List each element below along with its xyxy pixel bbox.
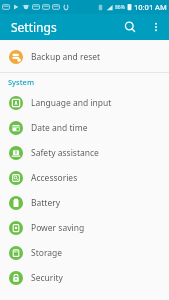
button[interactable]: Accessories xyxy=(0,165,169,190)
staticText: Language and input xyxy=(31,97,112,109)
button[interactable]: Backup and reset xyxy=(0,44,169,69)
staticText: Date and time xyxy=(31,122,88,134)
staticText: Accessories xyxy=(31,172,78,184)
staticText: Backup and reset xyxy=(31,51,101,63)
button[interactable]: Language and input xyxy=(0,90,169,115)
button[interactable]: More options xyxy=(143,14,169,40)
button[interactable]: Security xyxy=(0,265,169,290)
staticText: Power saving xyxy=(31,222,85,234)
button[interactable]: Safety assistance xyxy=(0,140,169,165)
staticText: 86% xyxy=(115,4,125,11)
button[interactable]: Date and time xyxy=(0,115,169,140)
button[interactable]: Search xyxy=(117,14,143,40)
staticText: Settings xyxy=(11,19,57,35)
staticText: System xyxy=(8,77,35,87)
staticText: Battery xyxy=(31,197,61,209)
staticText: Security xyxy=(31,272,63,284)
staticText: 10:01 AM xyxy=(134,2,167,12)
staticText: Storage xyxy=(31,247,63,259)
button[interactable]: Storage xyxy=(0,240,169,265)
staticText: Safety assistance xyxy=(31,147,99,159)
button[interactable]: Power saving xyxy=(0,215,169,240)
button[interactable]: Battery xyxy=(0,190,169,215)
